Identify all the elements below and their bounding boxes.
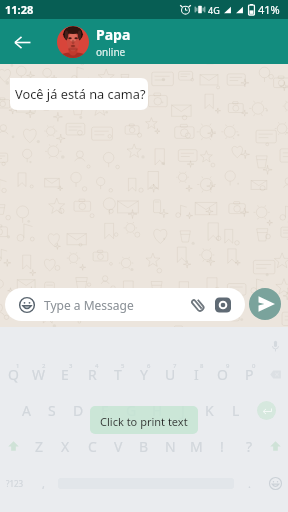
staticText: 7 — [173, 362, 177, 370]
staticText: online — [96, 45, 126, 59]
button[interactable]: X — [52, 432, 78, 460]
staticText: 6 — [147, 362, 151, 370]
button[interactable]: Click to print text — [90, 406, 198, 434]
staticText: . — [248, 476, 251, 491]
button[interactable]: N — [157, 432, 183, 460]
staticText: C — [88, 437, 97, 456]
button[interactable]: E — [52, 360, 78, 388]
button[interactable]: ?123 — [0, 470, 30, 496]
button[interactable]: L — [223, 396, 249, 424]
staticText: V — [114, 437, 123, 456]
staticText: B — [139, 437, 149, 456]
staticText: ?123 — [6, 478, 24, 489]
button[interactable]: C — [79, 432, 105, 460]
staticText: R — [88, 365, 97, 384]
staticText: Y — [140, 365, 148, 384]
staticText: Type a Message — [44, 297, 134, 313]
button[interactable]: D — [65, 396, 91, 424]
button[interactable]: P — [236, 360, 262, 388]
button[interactable]: H — [144, 396, 170, 424]
button[interactable]: Z — [26, 432, 52, 460]
staticText: P — [245, 365, 254, 384]
button[interactable]: W — [26, 360, 52, 388]
button[interactable]: J — [170, 396, 196, 424]
staticText: D — [73, 401, 84, 420]
staticText: Papa — [96, 25, 131, 44]
staticText: L — [232, 401, 240, 420]
staticText: ! — [220, 437, 224, 456]
staticText: 5 — [121, 362, 125, 370]
button[interactable]: T — [105, 360, 131, 388]
button[interactable]: S — [39, 396, 65, 424]
staticText: 3 — [69, 362, 73, 370]
button[interactable]: Shift — [0, 432, 26, 460]
button[interactable]: I — [183, 360, 209, 388]
button[interactable]: ? — [236, 432, 262, 460]
button[interactable]: B — [131, 432, 157, 460]
staticText: 8 — [200, 362, 204, 370]
staticText: Q — [8, 365, 19, 384]
button[interactable]: R — [79, 360, 105, 388]
staticText: O — [217, 365, 228, 384]
staticText: 0 — [252, 362, 256, 370]
button[interactable]: Shift — [262, 432, 288, 460]
button[interactable]: K — [196, 396, 222, 424]
button[interactable]: Backspace — [262, 360, 288, 388]
staticText: W — [32, 365, 46, 384]
button[interactable]: Q — [0, 360, 26, 388]
staticText: 4G — [208, 4, 220, 16]
staticText: T — [114, 365, 122, 384]
button[interactable]: Send — [249, 288, 281, 320]
staticText: ? — [246, 437, 253, 456]
button[interactable]: F — [92, 396, 118, 424]
staticText: K — [205, 401, 214, 420]
staticText: J — [181, 401, 185, 420]
button[interactable]: U — [157, 360, 183, 388]
staticText: N — [165, 437, 176, 456]
button[interactable]: Type a Message — [5, 288, 245, 321]
staticText: M — [190, 437, 203, 456]
button[interactable]: Emoji — [262, 470, 288, 496]
staticText: S — [48, 401, 56, 420]
button[interactable]: A — [13, 396, 39, 424]
other: Camera — [215, 297, 231, 313]
staticText: 4 — [95, 362, 99, 370]
staticText: E — [61, 365, 69, 384]
staticText: 41% — [258, 2, 280, 17]
button[interactable]: Enter — [257, 401, 276, 420]
button[interactable]: Você já está na cama? — [4, 78, 148, 110]
staticText: X — [61, 437, 70, 456]
staticText: Você já está na cama? — [15, 85, 146, 102]
button[interactable]: Y — [131, 360, 157, 388]
button[interactable]: M — [183, 432, 209, 460]
staticText: H — [152, 401, 163, 420]
button[interactable]: Papa — [57, 19, 288, 64]
staticText: 11:28 — [5, 2, 34, 17]
button[interactable]: V — [105, 432, 131, 460]
staticText: Click to print text — [100, 414, 188, 429]
button[interactable]: Back — [5, 25, 39, 59]
staticText: 2 — [42, 362, 46, 370]
button[interactable]: O — [209, 360, 235, 388]
staticText: 1 — [16, 362, 20, 370]
staticText: , — [42, 476, 45, 491]
staticText: I — [194, 365, 199, 384]
staticText: G — [126, 401, 137, 420]
other: Attach file — [190, 297, 206, 313]
staticText: A — [22, 401, 31, 420]
button[interactable]: G — [118, 396, 144, 424]
staticText: U — [165, 365, 176, 384]
staticText: 9 — [226, 362, 230, 370]
staticText: Z — [35, 437, 44, 456]
button[interactable]: Voice input — [263, 334, 287, 358]
staticText: F — [101, 401, 109, 420]
